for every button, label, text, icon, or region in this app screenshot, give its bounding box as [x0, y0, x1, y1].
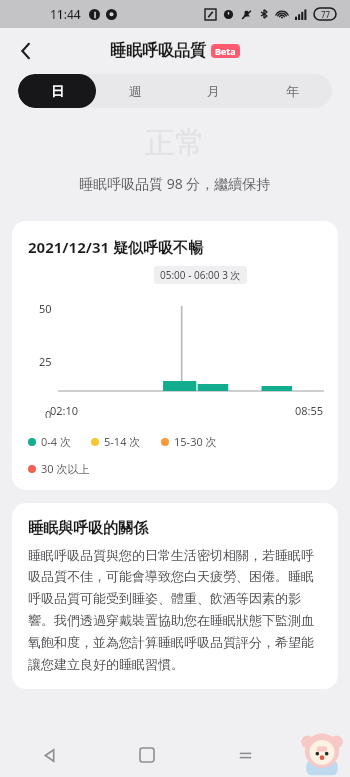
- staticText: 月: [207, 83, 220, 99]
- staticText: Beta: [215, 45, 236, 57]
- staticText: 08:55: [295, 403, 324, 418]
- staticText: 2021/12/31 疑似呼吸不暢: [28, 237, 203, 257]
- staticText: 0-4 次: [41, 434, 71, 449]
- staticText: 睡眠與呼吸的關係: [28, 519, 148, 538]
- staticText: 77: [321, 9, 331, 20]
- staticText: 15-30 次: [174, 434, 217, 449]
- staticText: 05:00 - 06:00 3 次: [160, 268, 241, 282]
- staticText: 25: [39, 354, 52, 369]
- button[interactable]: 週: [96, 74, 174, 108]
- button[interactable]: Home: [98, 733, 196, 777]
- button[interactable]: 月: [174, 74, 253, 108]
- staticText: 5-14 次: [104, 434, 141, 449]
- staticText: 正常: [145, 124, 205, 162]
- staticText: 0: [45, 407, 52, 418]
- staticText: 日: [51, 83, 64, 99]
- staticText: 30 次以上: [41, 461, 90, 476]
- button[interactable]: Recents: [196, 733, 294, 777]
- staticText: 睡眠呼吸品質: [110, 41, 206, 61]
- button[interactable]: Back: [6, 31, 46, 71]
- staticText: 睡眠呼吸品質與您的日常生活密切相關，若睡眠呼吸品質不佳，可能會導致您白天疲勞、困…: [28, 547, 322, 673]
- staticText: 02:10: [50, 403, 79, 418]
- staticText: 50: [39, 301, 52, 316]
- staticText: 睡眠呼吸品質 98 分，繼續保持: [79, 174, 271, 193]
- button[interactable]: 日: [18, 74, 96, 108]
- staticText: 週: [129, 83, 142, 99]
- staticText: 年: [286, 83, 299, 99]
- button[interactable]: Back: [0, 733, 98, 777]
- button[interactable]: 年: [253, 74, 332, 108]
- staticText: 11:44: [50, 6, 81, 22]
